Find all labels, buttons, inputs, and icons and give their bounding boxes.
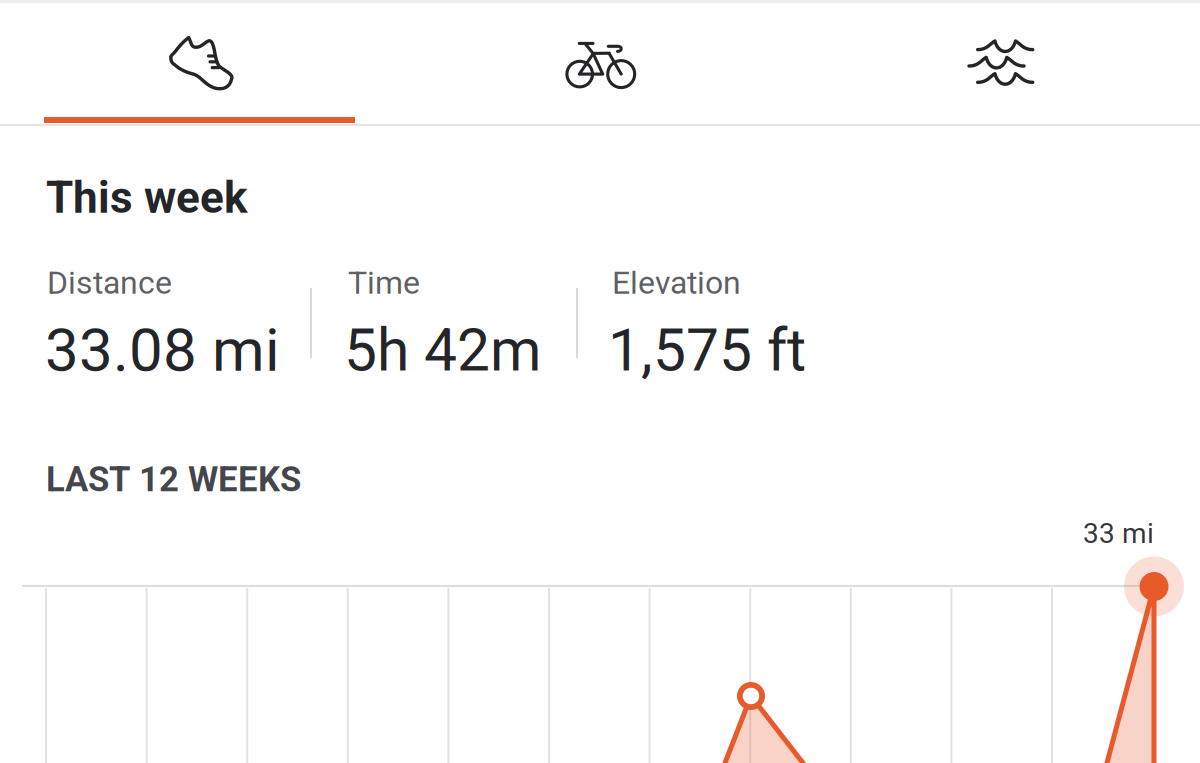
staticText: 1,575 ft — [608, 316, 806, 385]
staticText: This week — [46, 172, 248, 224]
staticText: Distance — [47, 264, 172, 301]
staticText: 33 mi — [1083, 517, 1154, 550]
button[interactable]: Running — [0, 0, 400, 125]
staticText: Time — [348, 264, 420, 301]
button[interactable]: Swimming — [800, 0, 1200, 125]
button[interactable]: Cycling — [400, 0, 800, 125]
staticText: LAST 12 WEEKS — [46, 459, 301, 500]
staticText: 33.08 mi — [45, 315, 280, 385]
staticText: 5h 42m — [344, 316, 541, 385]
staticText: Elevation — [612, 264, 741, 301]
